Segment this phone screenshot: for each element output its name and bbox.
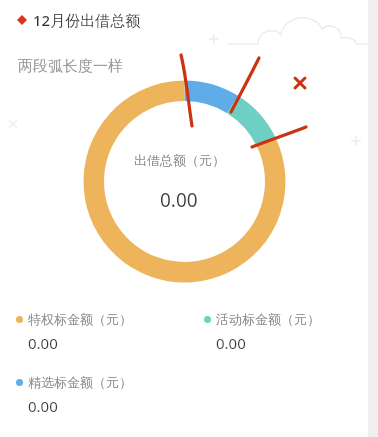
- staticText: 两段弧长度一样: [18, 57, 123, 76]
- button[interactable]: 精选标金额（元）: [16, 374, 188, 416]
- button[interactable]: 12月份出借总额: [16, 10, 368, 30]
- staticText: 出借总额（元）: [134, 152, 225, 168]
- staticText: 0.00: [28, 333, 58, 353]
- staticText: 0.00: [28, 396, 58, 416]
- button[interactable]: 特权标金额（元）: [16, 311, 188, 353]
- staticText: 0.00: [216, 333, 246, 353]
- staticText: 0.00: [160, 187, 198, 213]
- button[interactable]: 活动标金额（元）: [204, 311, 368, 353]
- staticText: 12月份出借总额: [33, 10, 141, 30]
- staticText: 特权标金额（元）: [28, 311, 132, 327]
- staticText: 精选标金额（元）: [28, 374, 132, 390]
- staticText: 活动标金额（元）: [216, 311, 320, 327]
